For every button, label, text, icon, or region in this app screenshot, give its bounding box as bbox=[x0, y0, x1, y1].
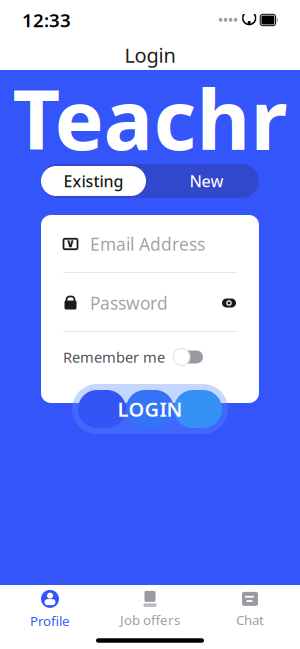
staticText: Login bbox=[124, 42, 175, 68]
staticText: Teachr bbox=[12, 63, 287, 173]
button[interactable]: Job offers bbox=[100, 588, 200, 630]
button[interactable]: Show password bbox=[221, 297, 237, 309]
button[interactable]: Chat bbox=[200, 588, 300, 630]
staticText: ∨ bbox=[65, 236, 75, 250]
staticText: New bbox=[189, 170, 223, 192]
staticText: Chat bbox=[236, 611, 264, 629]
staticText: Existing bbox=[63, 170, 123, 192]
staticText: Password bbox=[90, 291, 168, 314]
staticText: Remember me bbox=[63, 347, 165, 367]
button[interactable]: New bbox=[154, 166, 259, 196]
button[interactable]: Existing bbox=[41, 166, 146, 196]
button[interactable]: LOGIN bbox=[41, 384, 259, 434]
staticText: Job offers bbox=[120, 611, 180, 629]
staticText: LOGIN bbox=[117, 396, 182, 422]
staticText: 12:33 bbox=[22, 8, 71, 32]
staticText: Email Address bbox=[90, 232, 205, 255]
staticText: Profile bbox=[30, 612, 70, 630]
staticText: •••• bbox=[218, 12, 238, 28]
button[interactable]: Remember me bbox=[173, 348, 203, 365]
button[interactable]: Profile bbox=[0, 588, 100, 630]
